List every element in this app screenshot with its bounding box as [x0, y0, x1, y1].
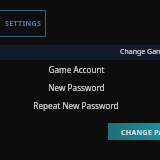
button[interactable]: Repeat New Password [0, 96, 156, 114]
staticText: CHANGE PASSWORD [121, 128, 160, 138]
staticText: Change Game Account Password [120, 47, 160, 57]
button[interactable]: SETTINGS [0, 10, 46, 37]
staticText: Repeat New Password [33, 100, 119, 111]
staticText: Game Account [48, 64, 105, 75]
staticText: SETTINGS [5, 19, 42, 29]
button[interactable]: CHANGE PASSWORD [108, 123, 160, 140]
staticText: New Password [48, 82, 105, 93]
button[interactable]: New Password [0, 78, 156, 96]
button[interactable]: Game Account [0, 60, 156, 78]
